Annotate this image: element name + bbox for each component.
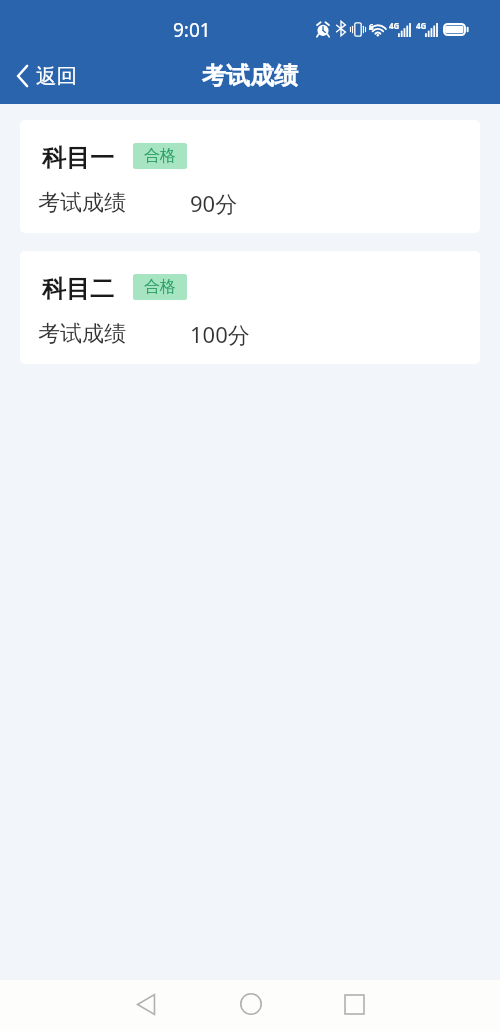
staticText: 考试成绩 — [38, 189, 126, 217]
button[interactable]: Back — [124, 982, 168, 1026]
button[interactable]: 科目一 — [20, 120, 480, 233]
button[interactable]: 返回 — [0, 48, 93, 104]
staticText: 4G — [389, 20, 400, 31]
staticText: 考试成绩 — [38, 320, 126, 348]
staticText: 合格 — [144, 146, 176, 166]
button[interactable]: 科目二 — [20, 251, 480, 364]
button[interactable]: Home — [229, 982, 273, 1026]
staticText: 考试成绩 — [202, 61, 298, 91]
staticText: 9:01 — [173, 17, 211, 43]
staticText: 90分 — [190, 188, 238, 218]
staticText: 6 — [369, 21, 374, 32]
staticText: 100分 — [190, 319, 250, 349]
staticText: 科目二 — [42, 274, 114, 304]
staticText: 4G — [416, 20, 427, 31]
staticText: 科目一 — [42, 143, 114, 173]
button[interactable]: Recent apps — [332, 982, 376, 1026]
staticText: 合格 — [144, 277, 176, 297]
staticText: 返回 — [36, 63, 77, 89]
